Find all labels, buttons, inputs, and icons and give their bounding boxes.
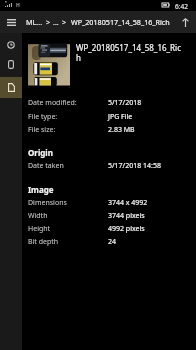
staticText: ... — [53, 17, 59, 27]
button[interactable]: Go up one level — [174, 11, 196, 33]
button[interactable]: Bit depth — [22, 235, 196, 248]
staticText: ML... — [26, 17, 43, 27]
staticText: > — [62, 17, 67, 27]
staticText: Date taken — [28, 161, 108, 171]
staticText: 5/17/2018 — [108, 98, 142, 108]
button[interactable]: Height — [22, 222, 196, 235]
staticText: > — [46, 17, 51, 27]
button[interactable]: File size: — [22, 123, 196, 136]
staticText: Width — [28, 211, 108, 221]
staticText: Origin — [28, 147, 53, 158]
button[interactable]: Width — [22, 209, 196, 222]
button[interactable]: Files — [0, 77, 22, 98]
button[interactable]: Dimensions — [22, 196, 196, 209]
staticText: WP_20180517_14_58_16_Rich — [71, 17, 170, 27]
button[interactable]: ML... — [26, 11, 176, 33]
staticText: 3744 x 4992 — [108, 198, 148, 208]
button[interactable]: This device — [0, 54, 22, 75]
staticText: JPG File — [108, 112, 133, 122]
button[interactable]: Recent — [0, 34, 22, 55]
staticText: Bit depth — [28, 237, 108, 247]
button[interactable]: Photo preview — [28, 40, 70, 88]
staticText: H — [16, 2, 20, 9]
staticText: Date modified: — [28, 98, 108, 108]
button[interactable]: Date modified: — [22, 96, 196, 109]
button[interactable]: Menu — [0, 11, 23, 33]
staticText: 4992 pixels — [108, 224, 145, 234]
staticText: Height — [28, 224, 108, 234]
button[interactable]: File type: — [22, 110, 196, 123]
staticText: Dimensions — [28, 198, 108, 208]
staticText: 3744 pixels — [108, 211, 145, 221]
button[interactable]: Date taken — [22, 159, 196, 172]
staticText: File type: — [28, 112, 108, 122]
staticText: 5/17/2018 14:58 — [108, 161, 161, 171]
staticText: File size: — [28, 125, 108, 135]
staticText: 24 — [108, 237, 117, 247]
staticText: 6:42 — [175, 2, 188, 11]
staticText: WP_20180517_14_58_16_Rich — [76, 42, 185, 63]
staticText: Image — [28, 184, 54, 195]
staticText: 2.83 MB — [108, 125, 135, 135]
